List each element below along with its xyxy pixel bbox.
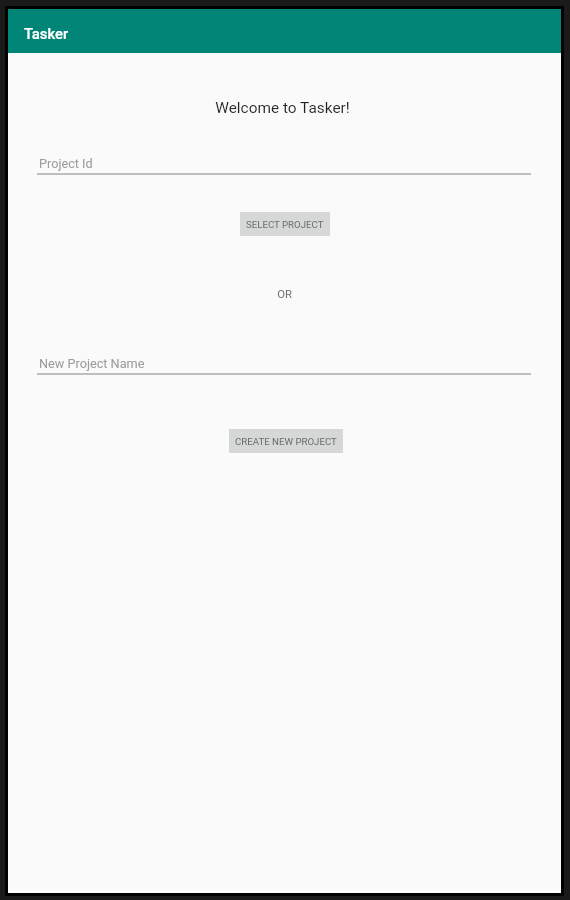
staticText: New Project Name <box>39 356 145 371</box>
staticText: Tasker <box>24 25 69 42</box>
staticText: Project Id <box>39 156 93 171</box>
staticText: CREATE NEW PROJECT <box>235 436 337 447</box>
button[interactable]: Project Id <box>37 148 531 176</box>
staticText: SELECT PROJECT <box>246 219 324 230</box>
button[interactable]: CREATE NEW PROJECT <box>229 429 343 453</box>
staticText: Welcome to Tasker! <box>6 99 559 117</box>
staticText: OR <box>8 288 561 301</box>
button[interactable]: SELECT PROJECT <box>240 212 330 236</box>
button[interactable]: New Project Name <box>37 348 531 376</box>
